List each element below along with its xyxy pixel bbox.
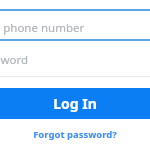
staticText: Forgot password? — [33, 128, 117, 141]
button[interactable]: Password — [0, 43, 150, 77]
staticText: Email or phone number — [0, 20, 85, 36]
button[interactable]: Log In — [0, 88, 150, 119]
button[interactable]: Forgot password? — [0, 124, 150, 144]
staticText: Log In — [53, 94, 97, 113]
staticText: Password — [0, 52, 29, 68]
button[interactable]: Email or phone number — [0, 0, 150, 34]
